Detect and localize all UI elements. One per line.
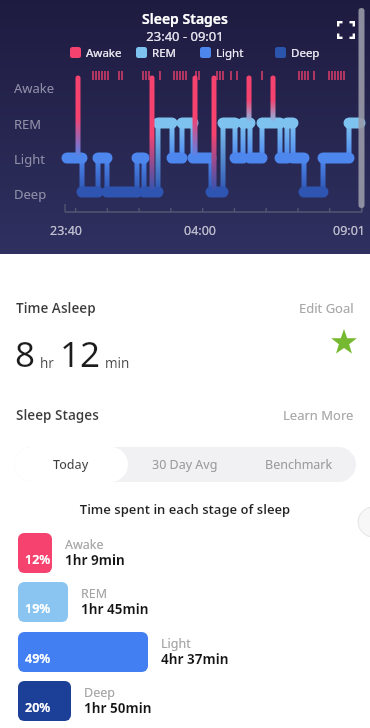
- staticText: REM: [81, 585, 108, 602]
- button[interactable]: Benchmark: [242, 447, 356, 482]
- staticText: Light: [216, 45, 244, 61]
- staticText: 30 Day Avg: [152, 456, 218, 473]
- staticText: 1hr 45min: [81, 600, 149, 618]
- staticText: Awake: [86, 45, 122, 61]
- button[interactable]: Today: [14, 447, 128, 482]
- staticText: 23:40 - 09:01: [0, 27, 370, 45]
- button[interactable]: [337, 21, 355, 39]
- staticText: 20%: [25, 699, 51, 716]
- staticText: 09:01: [333, 222, 365, 239]
- staticText: hr: [40, 354, 54, 372]
- staticText: Awake: [14, 79, 55, 97]
- staticText: REM: [14, 115, 42, 133]
- staticText: Deep: [291, 45, 320, 61]
- staticText: 12: [60, 330, 101, 378]
- staticText: Awake: [65, 536, 104, 553]
- staticText: 49%: [25, 650, 51, 667]
- button[interactable]: Learn More: [283, 406, 354, 424]
- staticText: 04:00: [184, 222, 216, 239]
- staticText: Benchmark: [265, 456, 333, 473]
- staticText: Light: [161, 635, 191, 652]
- staticText: 12%: [25, 551, 51, 568]
- staticText: Deep: [14, 185, 47, 203]
- staticText: 1hr 50min: [84, 699, 152, 717]
- staticText: Deep: [84, 684, 115, 701]
- button[interactable]: 30 Day Avg: [128, 447, 242, 482]
- staticText: Today: [53, 456, 89, 473]
- staticText: REM: [152, 45, 176, 61]
- staticText: 8: [15, 330, 36, 378]
- staticText: Light: [14, 150, 45, 168]
- staticText: Sleep Stages: [0, 9, 370, 28]
- staticText: min: [105, 354, 130, 372]
- staticText: 4hr 37min: [161, 650, 229, 668]
- staticText: Time Asleep: [16, 299, 96, 317]
- staticText: 19%: [25, 600, 51, 617]
- staticText: Sleep Stages: [16, 406, 99, 424]
- staticText: 1hr 9min: [65, 551, 125, 569]
- staticText: Time spent in each stage of sleep: [0, 500, 370, 518]
- staticText: 23:40: [50, 222, 82, 239]
- button[interactable]: Edit Goal: [299, 299, 354, 317]
